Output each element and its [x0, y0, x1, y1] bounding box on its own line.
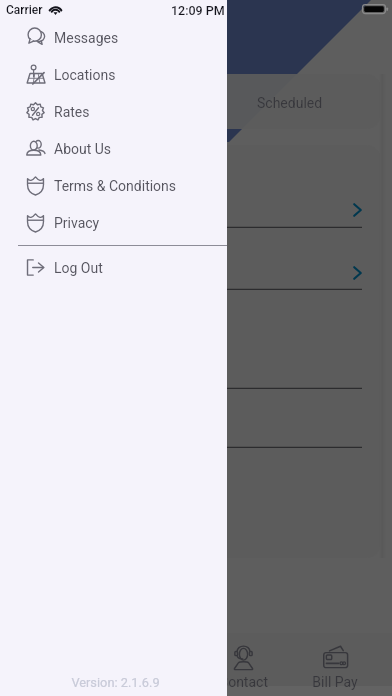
other: Contact	[231, 645, 256, 670]
staticText: Rates	[54, 104, 90, 120]
other: Bill Pay	[323, 645, 348, 670]
button[interactable]: Messages	[0, 19, 227, 56]
button[interactable]: Bill Pay	[291, 636, 379, 696]
staticText: Log Out	[54, 260, 103, 276]
staticText: 12:09 PM	[171, 3, 225, 18]
staticText: About Us	[54, 141, 112, 157]
button[interactable]: Contact	[199, 636, 287, 696]
staticText: Version: 2.1.6.9	[71, 675, 160, 690]
staticText: Privacy	[54, 215, 100, 231]
button[interactable]: Rates	[0, 93, 227, 130]
staticText: Locations	[54, 67, 116, 83]
button[interactable]: Log Out	[0, 249, 227, 286]
staticText: Contact	[219, 674, 268, 690]
button[interactable]: About Us	[0, 130, 227, 167]
staticText: Carrier	[6, 3, 43, 17]
staticText: Bill Pay	[312, 674, 358, 690]
staticText: Scheduled	[257, 95, 323, 111]
button[interactable]: Privacy	[0, 204, 227, 241]
button[interactable]: Locations	[0, 56, 227, 93]
staticText: Terms & Conditions	[54, 178, 177, 194]
staticText: Messages	[54, 30, 119, 46]
button[interactable]: Terms & Conditions	[0, 167, 227, 204]
